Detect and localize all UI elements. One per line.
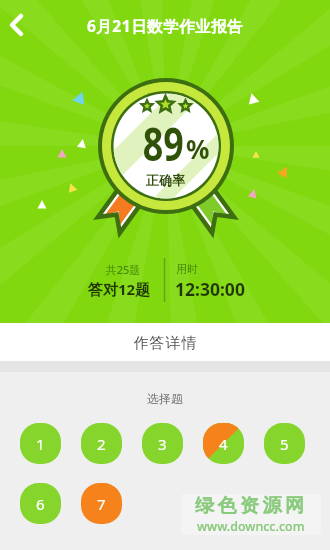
button[interactable]: 1 xyxy=(20,423,61,464)
staticText: 选择题 xyxy=(147,391,183,406)
staticText: 6 xyxy=(36,494,45,514)
staticText: 1 xyxy=(36,434,45,454)
staticText: 12:30:00 xyxy=(175,277,245,301)
staticText: 3 xyxy=(158,434,167,454)
staticText: 4 xyxy=(219,434,228,454)
button[interactable]: 4 xyxy=(203,423,244,464)
staticText: 正确率 xyxy=(146,172,185,188)
staticText: 作答详情 xyxy=(133,334,197,353)
staticText: % xyxy=(186,131,210,166)
button[interactable]: 5 xyxy=(264,423,305,464)
button[interactable]: 2 xyxy=(81,423,122,464)
staticText: 5 xyxy=(280,434,289,454)
button[interactable]: 3 xyxy=(142,423,183,464)
button[interactable]: 6 xyxy=(20,483,61,524)
staticText: 6月21日数学作业报告 xyxy=(87,15,244,36)
button[interactable]: 7 xyxy=(81,483,122,524)
staticText: 用时 xyxy=(176,262,198,276)
staticText: www.downcc.com xyxy=(197,518,305,535)
staticText: 绿色资源网 xyxy=(195,494,308,518)
staticText: 7 xyxy=(97,494,106,514)
button[interactable] xyxy=(0,0,36,50)
button[interactable]: 作答详情 xyxy=(0,323,330,361)
staticText: 答对12题 xyxy=(59,279,179,299)
staticText: 89 xyxy=(143,112,184,175)
staticText: 2 xyxy=(97,434,106,454)
staticText: 共25题 xyxy=(63,262,183,277)
